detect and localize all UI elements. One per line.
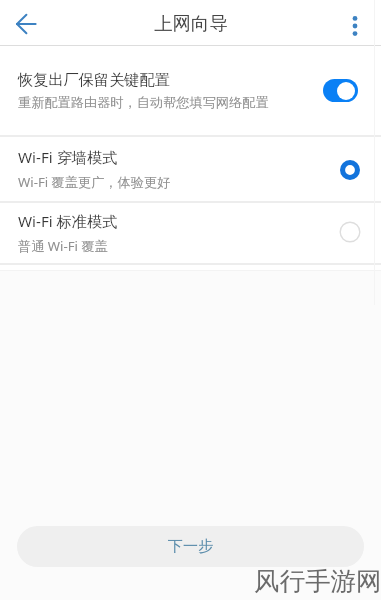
staticText: 重新配置路由器时，自动帮您填写网络配置 — [18, 94, 269, 111]
button[interactable]: Back — [9, 7, 43, 41]
staticText: 普通 Wi-Fi 覆盖 — [18, 237, 108, 255]
button[interactable]: Wall penetration mode selected — [339, 159, 361, 181]
button[interactable]: 下一步 — [17, 526, 364, 567]
button[interactable]: Standard mode not selected — [339, 221, 361, 243]
staticText: 恢复出厂保留关键配置 — [18, 70, 170, 89]
button[interactable]: More options — [338, 9, 372, 43]
staticText: 下一步 — [168, 537, 213, 556]
staticText: Wi-Fi 覆盖更广，体验更好 — [18, 173, 171, 191]
button[interactable]: Keep key configuration toggle — [323, 79, 358, 102]
staticText: Wi-Fi 标准模式 — [18, 211, 118, 232]
staticText: 风行手游网 — [254, 565, 381, 597]
button[interactable]: Wi-Fi 穿墙模式 — [0, 137, 381, 201]
staticText: Wi-Fi 穿墙模式 — [18, 147, 118, 168]
button[interactable]: Wi-Fi 标准模式 — [0, 203, 381, 263]
staticText: 上网向导 — [154, 12, 228, 35]
button[interactable]: 恢复出厂保留关键配置 — [0, 46, 381, 135]
